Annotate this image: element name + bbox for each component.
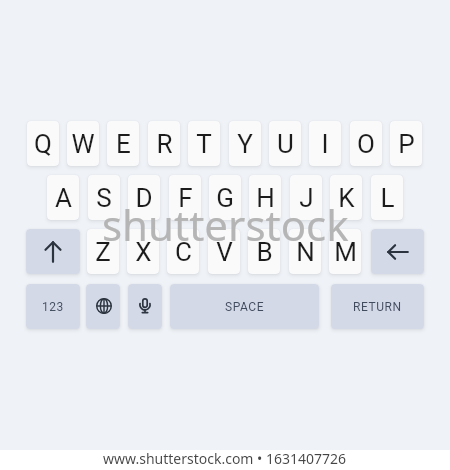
button[interactable]: Backspace <box>371 229 424 274</box>
button[interactable]: N <box>289 229 321 274</box>
button[interactable]: A <box>47 175 79 220</box>
staticText: Y <box>237 129 253 159</box>
button[interactable]: Change language <box>86 284 120 329</box>
staticText: T <box>196 129 212 159</box>
staticText: Q <box>34 129 52 159</box>
button[interactable]: 123 <box>26 284 80 329</box>
button[interactable]: L <box>371 175 403 220</box>
button[interactable]: P <box>390 121 422 166</box>
button[interactable]: C <box>167 229 199 274</box>
staticText: shutterstock <box>102 196 349 253</box>
staticText: R <box>156 129 173 159</box>
button[interactable]: U <box>269 121 301 166</box>
staticText: Z <box>95 237 111 267</box>
staticText: I <box>321 129 329 159</box>
button[interactable]: G <box>209 175 241 220</box>
staticText: RETURN <box>353 300 402 314</box>
staticText: C <box>175 237 192 267</box>
button[interactable]: SPACE <box>170 284 319 329</box>
staticText: M <box>334 237 357 267</box>
button[interactable]: K <box>330 175 362 220</box>
staticText: G <box>216 183 234 213</box>
button[interactable]: I <box>309 121 341 166</box>
button[interactable]: T <box>188 121 220 166</box>
button[interactable]: M <box>329 229 361 274</box>
staticText: X <box>135 237 152 267</box>
button[interactable]: X <box>127 229 159 274</box>
button[interactable]: H <box>249 175 281 220</box>
button[interactable]: Shift <box>26 229 80 274</box>
button[interactable]: V <box>208 229 240 274</box>
staticText: J <box>299 183 314 213</box>
staticText: V <box>216 237 233 267</box>
staticText: O <box>357 129 375 159</box>
button[interactable]: RETURN <box>331 284 424 329</box>
button[interactable]: O <box>350 121 382 166</box>
button[interactable]: Z <box>87 229 119 274</box>
staticText: P <box>398 129 415 159</box>
button[interactable]: D <box>128 175 160 220</box>
staticText: E <box>116 129 131 159</box>
staticText: H <box>256 183 275 213</box>
button[interactable]: Q <box>27 121 59 166</box>
staticText: L <box>380 183 395 213</box>
staticText: SPACE <box>225 300 265 314</box>
button[interactable]: R <box>148 121 180 166</box>
button[interactable]: Y <box>229 121 261 166</box>
staticText: W <box>71 129 95 159</box>
button[interactable]: E <box>107 121 139 166</box>
staticText: 123 <box>42 300 64 314</box>
button[interactable]: S <box>88 175 120 220</box>
button[interactable]: W <box>67 121 99 166</box>
button[interactable]: F <box>169 175 201 220</box>
staticText: N <box>296 237 315 267</box>
staticText: U <box>277 129 294 159</box>
staticText: A <box>55 183 72 213</box>
staticText: www.shutterstock.com • 1631407726 <box>103 449 347 468</box>
staticText: S <box>96 183 112 213</box>
staticText: B <box>256 237 273 267</box>
button[interactable]: Voice input <box>128 284 162 329</box>
staticText: K <box>338 183 355 213</box>
button[interactable]: J <box>290 175 322 220</box>
staticText: F <box>178 183 193 213</box>
button[interactable]: B <box>248 229 280 274</box>
staticText: D <box>135 183 153 213</box>
